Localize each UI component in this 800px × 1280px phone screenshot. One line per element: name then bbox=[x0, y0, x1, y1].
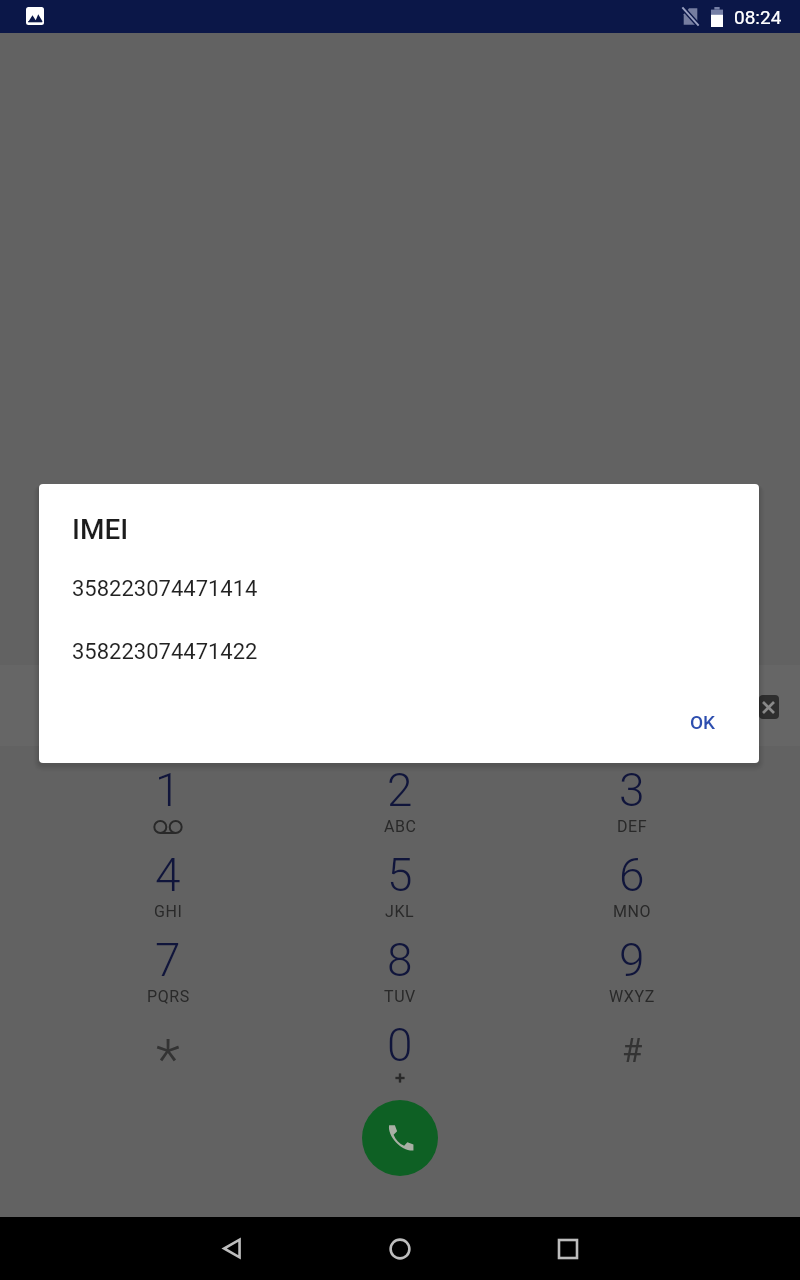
button[interactable]: Screenshot bbox=[26, 7, 44, 25]
staticText: 5 bbox=[387, 848, 413, 902]
staticText: JKL bbox=[385, 902, 415, 921]
button[interactable]: 2 bbox=[284, 763, 516, 848]
button[interactable]: Home bbox=[372, 1217, 428, 1280]
staticText: IMEI bbox=[72, 513, 129, 546]
staticText: 7 bbox=[155, 933, 181, 987]
button[interactable]: 7 bbox=[52, 933, 284, 1018]
staticText: ABC bbox=[384, 817, 417, 836]
button[interactable]: 1 bbox=[52, 763, 284, 848]
staticText: TUV bbox=[384, 987, 416, 1006]
button[interactable]: 4 bbox=[52, 848, 284, 933]
staticText: GHI bbox=[154, 902, 183, 921]
staticText: # bbox=[622, 1031, 643, 1070]
staticText: * bbox=[156, 1027, 180, 1093]
staticText: 6 bbox=[619, 848, 645, 902]
staticText: 2 bbox=[387, 763, 413, 817]
button[interactable]: Backspace bbox=[759, 695, 779, 719]
staticText: 3 bbox=[619, 763, 645, 817]
staticText: MNO bbox=[613, 902, 652, 921]
button[interactable]: 5 bbox=[284, 848, 516, 933]
staticText: 9 bbox=[619, 933, 645, 987]
button[interactable]: # bbox=[516, 1018, 748, 1103]
staticText: WXYZ bbox=[609, 987, 655, 1006]
staticText: PQRS bbox=[147, 987, 190, 1006]
staticText: 08:24 bbox=[734, 6, 782, 28]
button[interactable]: 6 bbox=[516, 848, 748, 933]
button[interactable]: 0 bbox=[284, 1018, 516, 1103]
staticText: 8 bbox=[387, 933, 413, 987]
button[interactable]: Back bbox=[204, 1217, 260, 1280]
staticText: 358223074471414 bbox=[72, 576, 258, 602]
staticText: 0 bbox=[387, 1018, 413, 1072]
button[interactable]: Call bbox=[362, 1100, 438, 1176]
staticText: OK bbox=[690, 711, 716, 733]
button[interactable]: 3 bbox=[516, 763, 748, 848]
staticText: 4 bbox=[155, 848, 181, 902]
button[interactable]: 8 bbox=[284, 933, 516, 1018]
button[interactable]: * bbox=[52, 1018, 284, 1103]
staticText: DEF bbox=[617, 817, 648, 836]
button[interactable]: Recent apps bbox=[540, 1217, 596, 1280]
staticText: 1 bbox=[155, 763, 181, 817]
button[interactable]: OK bbox=[676, 701, 730, 743]
staticText: 358223074471422 bbox=[72, 639, 258, 665]
button[interactable]: 9 bbox=[516, 933, 748, 1018]
